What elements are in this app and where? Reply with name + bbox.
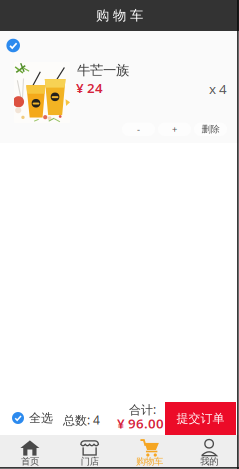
staticText: 总数: 4 bbox=[63, 412, 100, 428]
staticText: 提交订单 bbox=[176, 411, 224, 426]
staticText: 我的 bbox=[200, 456, 218, 467]
staticText: 删除 bbox=[201, 123, 219, 135]
staticText: ¥ 24 bbox=[76, 79, 103, 97]
button[interactable]: 删除 bbox=[194, 122, 227, 136]
button[interactable]: - bbox=[122, 122, 155, 136]
button[interactable]: 门店 bbox=[60, 435, 120, 467]
staticText: 首页 bbox=[21, 456, 39, 467]
button[interactable]: 首页 bbox=[0, 435, 60, 467]
staticText: ¥ 96.00 bbox=[117, 414, 164, 432]
staticText: 门店 bbox=[81, 456, 99, 467]
button[interactable]: 提交订单 bbox=[165, 402, 236, 435]
button[interactable]: 全选 bbox=[12, 407, 53, 429]
staticText: 牛芒一族 bbox=[77, 62, 129, 78]
staticText: - bbox=[137, 123, 140, 135]
button[interactable]: 我的 bbox=[179, 435, 239, 467]
staticText: 购物车 bbox=[136, 456, 163, 467]
staticText: + bbox=[172, 123, 177, 135]
staticText: 购 物 车 bbox=[96, 7, 143, 24]
button[interactable]: Select 牛芒一族 bbox=[1, 34, 25, 56]
staticText: x 4 bbox=[209, 80, 227, 98]
button[interactable]: + bbox=[158, 122, 191, 136]
staticText: 合计: bbox=[129, 401, 156, 417]
staticText: 全选 bbox=[29, 411, 53, 425]
button[interactable]: 购物车 bbox=[119, 435, 179, 467]
